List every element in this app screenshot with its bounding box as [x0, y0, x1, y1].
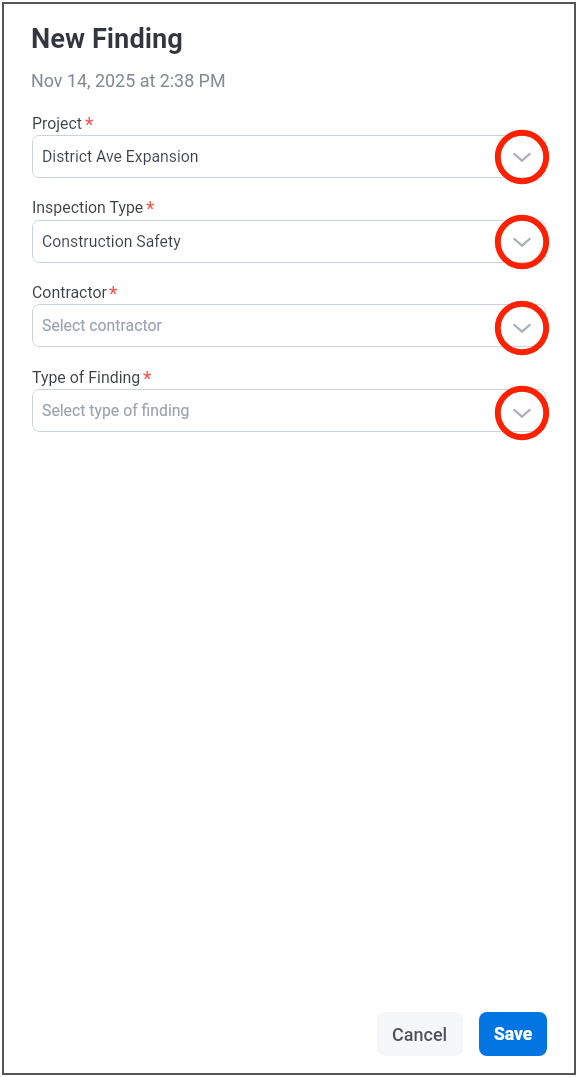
button[interactable]: Select type of finding	[505, 396, 539, 430]
staticText: New Finding	[31, 23, 183, 55]
button[interactable]: Save	[479, 1012, 547, 1056]
staticText: Nov 14, 2025 at 2:38 PM	[31, 70, 226, 91]
button[interactable]: Cancel	[377, 1012, 463, 1056]
staticText: Project	[32, 114, 83, 133]
staticText: Contractor	[32, 283, 107, 302]
staticText: Cancel	[392, 1024, 448, 1045]
staticText: Select type of finding	[42, 401, 190, 420]
staticText: Save	[494, 1024, 533, 1045]
button[interactable]: Select project	[505, 140, 539, 174]
staticText: *	[146, 198, 155, 221]
button[interactable]: Select contractor	[505, 311, 539, 345]
button[interactable]: Select contractor	[32, 304, 546, 347]
button[interactable]: Select type of finding	[32, 389, 546, 432]
button[interactable]: District Ave Expansion	[32, 135, 546, 178]
staticText: Inspection Type	[32, 198, 144, 217]
staticText: District Ave Expansion	[42, 147, 199, 166]
staticText: Construction Safety	[42, 232, 181, 251]
button[interactable]: Select inspection type	[505, 225, 539, 259]
staticText: Select contractor	[42, 316, 162, 335]
button[interactable]: Construction Safety	[32, 220, 546, 263]
staticText: Type of Finding	[32, 368, 141, 387]
staticText: *	[85, 114, 94, 137]
staticText: *	[143, 368, 152, 391]
staticText: *	[109, 283, 118, 306]
